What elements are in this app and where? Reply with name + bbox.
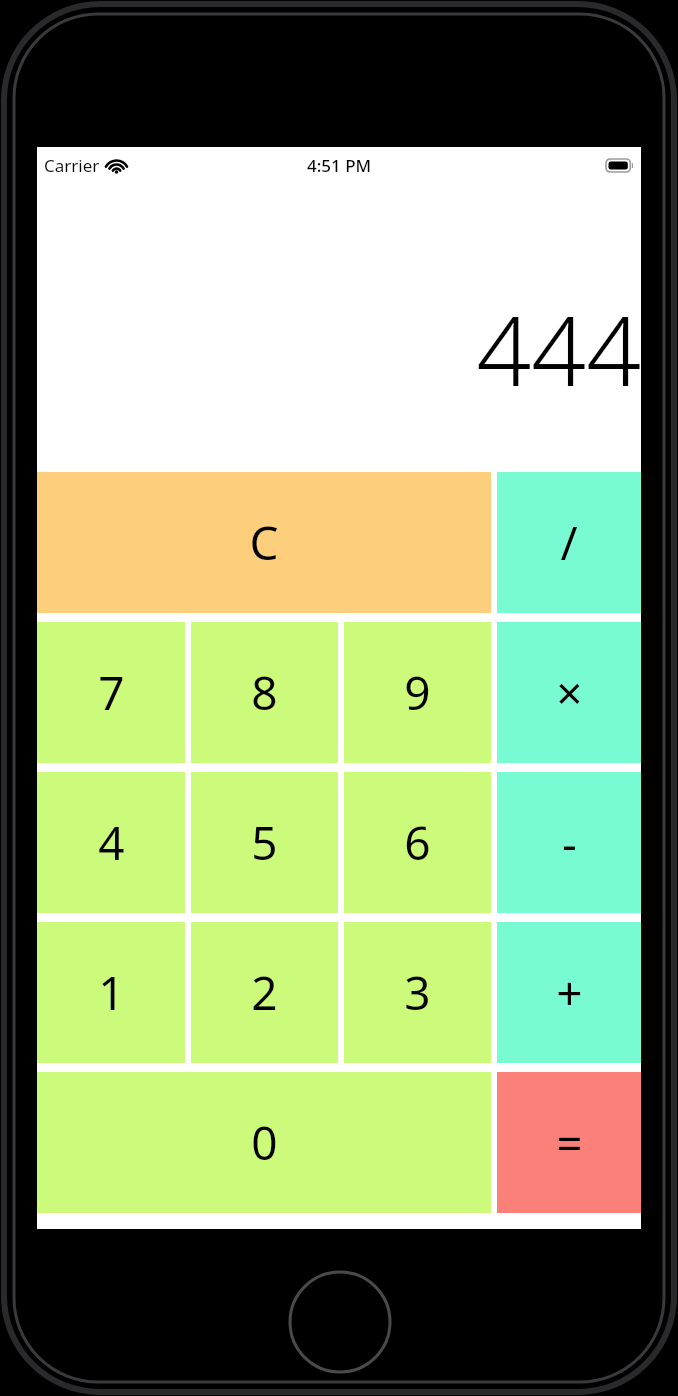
button[interactable]: 3 [344, 922, 491, 1063]
staticText: + [556, 961, 583, 1024]
button[interactable]: × [497, 622, 641, 763]
staticText: - [562, 811, 577, 874]
staticText: 6 [404, 811, 431, 874]
button[interactable]: 8 [191, 622, 338, 763]
button[interactable]: 5 [191, 772, 338, 913]
button[interactable]: 4 [37, 772, 185, 913]
staticText: 8 [251, 661, 278, 724]
staticText: Carrier [44, 154, 100, 177]
button[interactable]: = [497, 1072, 641, 1213]
staticText: × [556, 661, 583, 724]
staticText: 4 [98, 811, 125, 874]
other: Wi-Fi [106, 158, 127, 174]
staticText: 3 [404, 961, 431, 1024]
staticText: 5 [251, 811, 278, 874]
button[interactable]: Home [288, 1270, 392, 1374]
staticText: 444 [476, 283, 641, 414]
button[interactable]: 2 [191, 922, 338, 1063]
staticText: 0 [251, 1111, 278, 1174]
button[interactable]: + [497, 922, 641, 1063]
staticText: 7 [98, 661, 125, 724]
button[interactable]: 9 [344, 622, 491, 763]
other: Battery full [606, 159, 633, 172]
staticText: 1 [98, 961, 125, 1024]
button[interactable]: 6 [344, 772, 491, 913]
button[interactable]: - [497, 772, 641, 913]
button[interactable]: 0 [37, 1072, 491, 1213]
staticText: C [249, 511, 279, 574]
staticText: = [556, 1111, 583, 1174]
button[interactable]: C [37, 472, 491, 613]
staticText: 9 [404, 661, 431, 724]
button[interactable]: / [497, 472, 641, 613]
staticText: / [560, 511, 578, 574]
staticText: 4:51 PM [307, 154, 372, 177]
button[interactable]: 1 [37, 922, 185, 1063]
staticText: 2 [251, 961, 278, 1024]
button[interactable]: 7 [37, 622, 185, 763]
